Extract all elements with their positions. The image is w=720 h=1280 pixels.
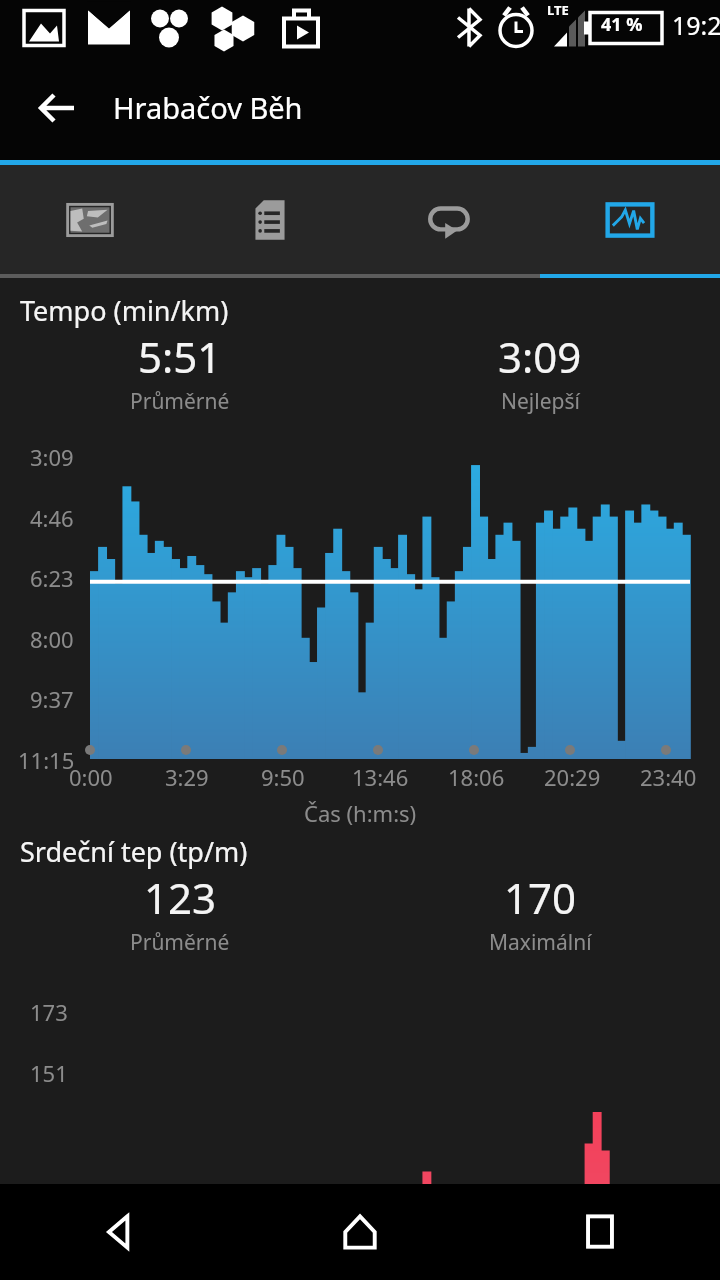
staticText: Tempo (min/km) [20, 292, 229, 329]
staticText: 5:51 [138, 328, 222, 385]
staticText: Srdeční tep (tp/m) [20, 833, 248, 870]
button[interactable]: Map [0, 165, 180, 274]
staticText: 23:40 [640, 762, 697, 792]
staticText: 4:46 [30, 503, 74, 533]
staticText: Průměrné [130, 928, 230, 957]
staticText: LTE [547, 1, 569, 19]
staticText: Nejlepší [501, 387, 580, 416]
staticText: 41 % [601, 12, 643, 37]
staticText: 123 [144, 869, 217, 926]
staticText: 170 [504, 869, 577, 926]
staticText: 11:15 [18, 745, 75, 775]
staticText: Čas (h:m:s) [304, 798, 417, 828]
staticText: Průměrné [130, 387, 230, 416]
staticText: 9:50 [261, 762, 305, 792]
button[interactable]: Laps [360, 165, 540, 274]
staticText: 173 [30, 997, 68, 1027]
staticText: 3:09 [498, 328, 582, 385]
staticText: Hrabačov Běh [113, 88, 303, 127]
staticText: 18:06 [448, 762, 505, 792]
staticText: 151 [30, 1058, 68, 1088]
button[interactable]: Back [28, 78, 88, 138]
staticText: 3:09 [30, 442, 74, 472]
staticText: 13:46 [352, 762, 409, 792]
staticText: 6:23 [30, 563, 74, 593]
button[interactable]: Back [0, 1184, 240, 1280]
staticText: 19:23 [672, 8, 720, 42]
staticText: 8:00 [30, 624, 74, 654]
button[interactable]: Details [180, 165, 360, 274]
staticText: Maximální [489, 928, 592, 957]
staticText: 9:37 [30, 684, 74, 714]
button[interactable]: Recent apps [480, 1184, 720, 1280]
staticText: 20:29 [544, 762, 601, 792]
staticText: 3:29 [165, 762, 209, 792]
button[interactable]: Home [240, 1184, 480, 1280]
staticText: 0:00 [69, 762, 113, 792]
button[interactable]: Charts [540, 165, 720, 274]
